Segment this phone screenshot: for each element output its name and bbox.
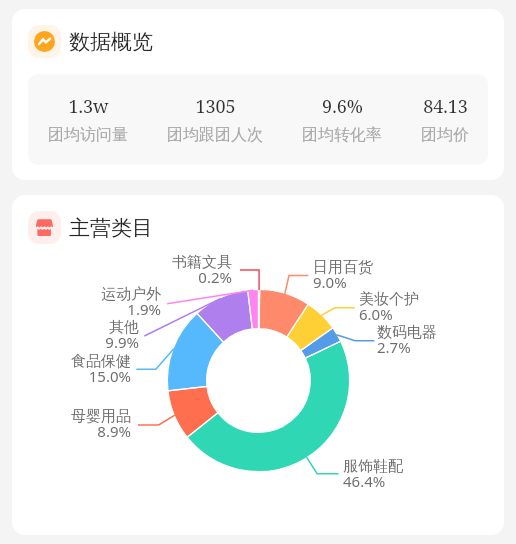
button[interactable]: 母婴用品 [12,407,131,426]
button[interactable]: Category [28,211,153,244]
button[interactable]: 1305 [167,74,263,165]
staticText: 日用百货 [313,258,463,277]
staticText: 数据概览 [69,29,153,55]
staticText: 0.2% [82,267,232,287]
staticText: 2.7% [377,337,504,357]
button[interactable]: 数据概览 [28,25,153,58]
staticText: 主营类目 [69,215,153,241]
staticText: 6.0% [359,304,504,324]
staticText: 1.9% [12,299,161,319]
staticText: 9.6% [322,94,363,119]
staticText: 84.13 [423,94,468,119]
staticText: 运动户外 [12,285,161,304]
staticText: 团均跟团人次 [167,125,263,145]
staticText: 数码电器 [377,323,504,342]
button[interactable]: 9.6% [302,74,382,165]
staticText: 1305 [195,94,236,119]
staticText: 服饰鞋配 [343,457,493,476]
staticText: 9.9% [12,332,139,352]
staticText: 食品保健 [12,352,131,371]
staticText: 团均转化率 [302,125,382,145]
button[interactable]: 美妆个护 [359,290,504,309]
button[interactable]: 84.13 [421,74,469,165]
staticText: 8.9% [12,421,131,441]
staticText: 美妆个护 [359,290,504,309]
staticText: 母婴用品 [12,407,131,426]
staticText: 9.0% [313,272,463,292]
staticText: 15.0% [12,366,131,386]
button[interactable]: 服饰鞋配 [343,457,493,476]
button[interactable]: 运动户外 [12,285,161,304]
staticText: 团均访问量 [48,125,128,145]
staticText: 1.3w [68,94,109,119]
button[interactable]: 日用百货 [313,258,463,277]
button[interactable]: 数码电器 [377,323,504,342]
button[interactable]: 食品保健 [12,352,131,371]
staticText: 其他 [12,318,139,337]
button[interactable]: 书籍文具 [82,253,232,272]
staticText: 团均价 [421,125,469,145]
button[interactable]: 1.3w [48,74,128,165]
button[interactable]: 其他 [12,318,139,337]
staticText: 46.4% [343,471,493,491]
staticText: 书籍文具 [82,253,232,272]
other: Category [28,211,61,244]
